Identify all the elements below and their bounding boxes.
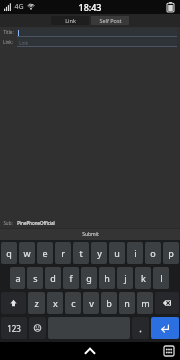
button[interactable]: l — [153, 267, 169, 289]
staticText: Title: — [3, 29, 14, 35]
button[interactable]: i — [127, 242, 143, 264]
staticText: j — [124, 272, 127, 284]
button[interactable]: x — [47, 292, 63, 314]
staticText: Link: — [3, 39, 13, 45]
staticText: d — [50, 272, 56, 284]
staticText: Self Post — [99, 17, 122, 24]
staticText: Submit — [82, 231, 99, 238]
staticText: Link — [65, 17, 76, 24]
button[interactable]: c — [65, 292, 81, 314]
button[interactable]: m — [137, 292, 153, 314]
button[interactable]: h — [99, 267, 115, 289]
staticText: n — [124, 297, 130, 309]
staticText: PinePhoneOfficial — [17, 220, 55, 226]
button[interactable]: n — [119, 292, 135, 314]
button[interactable]: Shift — [1, 292, 26, 314]
button[interactable]: j — [117, 267, 133, 289]
staticText: p — [168, 247, 174, 259]
button[interactable]: e — [37, 242, 53, 264]
staticText: o — [150, 247, 156, 259]
button[interactable]: Title: — [3, 27, 177, 37]
staticText: y — [97, 247, 102, 259]
button[interactable]: w — [19, 242, 35, 264]
staticText: t — [79, 247, 83, 259]
button[interactable]: g — [81, 267, 97, 289]
staticText: e — [42, 247, 48, 259]
button[interactable]: y — [91, 242, 107, 264]
staticText: s — [33, 272, 38, 284]
staticText: w — [23, 247, 31, 259]
button[interactable]: a — [10, 267, 25, 289]
staticText: r — [61, 247, 65, 259]
button[interactable]: 123 — [1, 317, 27, 339]
staticText: x — [53, 297, 58, 309]
button[interactable]: Self Post — [91, 16, 129, 25]
staticText: 123 — [7, 323, 21, 334]
staticText: k — [141, 272, 146, 284]
staticText: i — [134, 247, 137, 259]
button[interactable]: s — [27, 267, 43, 289]
button[interactable]: p — [163, 242, 179, 264]
staticText: l — [160, 272, 163, 284]
staticText: v — [89, 297, 94, 309]
button[interactable]: f — [63, 267, 79, 289]
button[interactable]: d — [45, 267, 61, 289]
staticText: q — [6, 247, 12, 259]
staticText: z — [34, 297, 39, 309]
button[interactable]: r — [55, 242, 71, 264]
button[interactable]: z — [28, 292, 45, 314]
button[interactable]: Submit — [0, 228, 180, 240]
staticText: 18:43 — [78, 1, 102, 13]
button[interactable]: Emoji — [29, 317, 46, 339]
staticText: a — [15, 272, 21, 284]
button[interactable]: Link — [51, 16, 89, 25]
button[interactable]: o — [145, 242, 161, 264]
button[interactable]: u — [109, 242, 125, 264]
staticText: f — [69, 272, 73, 284]
staticText: m — [141, 297, 150, 309]
staticText: 4G — [14, 2, 24, 12]
staticText: Link — [19, 40, 28, 46]
staticText: c — [71, 297, 76, 309]
staticText: Sub: — [3, 220, 13, 226]
button[interactable]: Backspace — [155, 292, 179, 314]
staticText: h — [104, 272, 110, 284]
button[interactable]: q — [1, 242, 17, 264]
button[interactable]: t — [73, 242, 89, 264]
button[interactable]: Link: — [3, 37, 177, 47]
button[interactable]: k — [135, 267, 151, 289]
button[interactable]: Sub: — [3, 217, 177, 228]
button[interactable]: Enter — [151, 317, 179, 339]
button[interactable]: Period — [132, 317, 149, 339]
button[interactable]: v — [83, 292, 99, 314]
staticText: u — [114, 247, 120, 259]
staticText: b — [106, 297, 112, 309]
button[interactable]: b — [101, 292, 117, 314]
staticText: g — [86, 272, 92, 284]
button[interactable]: Switch keyboard — [164, 346, 174, 356]
button[interactable]: Hide keyboard — [79, 342, 101, 360]
